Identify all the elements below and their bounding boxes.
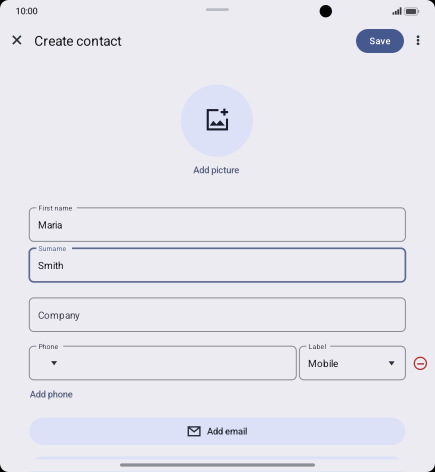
staticText: Label (309, 343, 327, 351)
staticText: Save (369, 35, 390, 46)
button[interactable]: Add picture (193, 164, 239, 175)
button[interactable]: Phone type (44, 354, 64, 372)
staticText: Mobile (308, 358, 338, 369)
staticText: Company (38, 309, 80, 321)
staticText: Smith (38, 260, 63, 271)
button[interactable]: Remove phone (410, 352, 432, 374)
staticText: Add phone (30, 389, 73, 400)
staticText: 10:00 (16, 6, 38, 17)
button[interactable]: Add email (29, 418, 405, 445)
button[interactable]: Save (356, 29, 404, 53)
button[interactable]: Add picture (181, 85, 253, 157)
button[interactable]: Close (4, 27, 30, 53)
button[interactable]: More options (407, 29, 429, 51)
button[interactable]: Add phone (30, 389, 73, 400)
staticText: Maria (38, 219, 62, 231)
staticText: Create contact (34, 33, 121, 49)
button[interactable]: Label type (382, 354, 402, 372)
staticText: First name (38, 204, 72, 212)
staticText: Add email (207, 426, 247, 437)
staticText: Add picture (193, 164, 239, 175)
staticText: Phone (38, 343, 58, 351)
staticText: Surname (38, 245, 66, 253)
